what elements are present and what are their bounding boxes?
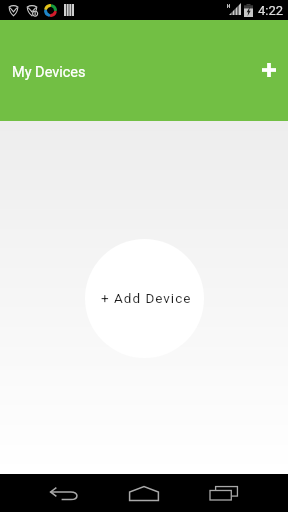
- button[interactable]: Home: [114, 474, 174, 512]
- staticText: 4:22: [258, 3, 284, 18]
- button[interactable]: Back: [34, 474, 94, 512]
- button[interactable]: Recent apps: [194, 474, 254, 512]
- button[interactable]: Add device: [254, 55, 284, 85]
- button[interactable]: + Add Device: [85, 239, 204, 358]
- staticText: + Add Device: [101, 290, 192, 306]
- staticText: My Devices: [12, 64, 86, 81]
